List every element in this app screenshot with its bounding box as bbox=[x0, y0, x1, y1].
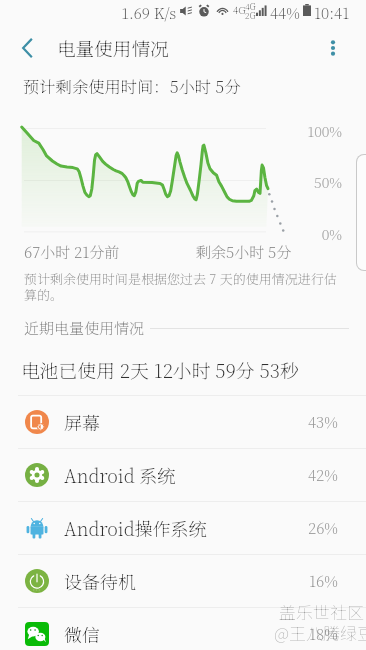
staticText: 50% bbox=[296, 172, 342, 192]
staticText: 预计剩余使用时间：5小时 5分 bbox=[23, 74, 241, 97]
button[interactable]: 屏幕 bbox=[0, 396, 366, 448]
staticText: 44% bbox=[270, 2, 300, 24]
staticText: 盖乐世社区 bbox=[279, 599, 364, 624]
button[interactable]: 设备待机 bbox=[0, 555, 366, 607]
button[interactable]: More options bbox=[311, 26, 355, 70]
staticText: 18% bbox=[309, 623, 338, 645]
staticText: 4G bbox=[233, 2, 246, 16]
staticText: 微信 bbox=[64, 621, 100, 647]
staticText: @王八腾绿豆 bbox=[274, 620, 366, 645]
staticText: 2G bbox=[245, 9, 256, 21]
staticText: 设备待机 bbox=[64, 568, 136, 594]
staticText: 电池已使用 2天 12小时 59分 53秒 bbox=[21, 356, 299, 383]
staticText: 预计剩余使用时间是根据您过去 7 天的使用情况进行估算的。 bbox=[24, 269, 339, 304]
staticText: 26% bbox=[308, 517, 338, 539]
staticText: 43% bbox=[308, 411, 338, 433]
button[interactable]: 微信 bbox=[0, 608, 366, 650]
button[interactable]: Android 系统 bbox=[0, 449, 366, 501]
staticText: 16% bbox=[309, 570, 338, 592]
staticText: 4G bbox=[245, 0, 256, 12]
staticText: 10:41 bbox=[314, 2, 350, 24]
button[interactable]: Back bbox=[6, 26, 50, 70]
staticText: Android 系统 bbox=[64, 462, 176, 488]
staticText: 0% bbox=[296, 224, 342, 244]
staticText: 近期电量使用情况 bbox=[24, 317, 145, 339]
staticText: 屏幕 bbox=[64, 409, 100, 435]
staticText: 67小时 21分前 bbox=[24, 241, 120, 263]
staticText: 电量使用情况 bbox=[57, 35, 169, 62]
staticText: 100% bbox=[296, 121, 342, 141]
button[interactable]: Android操作系统 bbox=[0, 502, 366, 554]
staticText: 1.69 K/s bbox=[121, 2, 177, 24]
staticText: 42% bbox=[308, 464, 338, 486]
staticText: 剩余5小时 5分 bbox=[196, 241, 292, 263]
staticText: Android操作系统 bbox=[64, 515, 207, 541]
